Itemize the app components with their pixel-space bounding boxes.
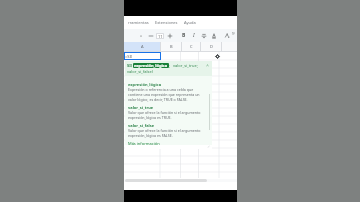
staticText: rramientas (128, 20, 149, 25)
button[interactable]: Borders (232, 31, 235, 40)
staticText: Valor que ofrece la función si el argume… (128, 110, 208, 120)
staticText: ; (169, 63, 171, 68)
button[interactable]: A (124, 42, 160, 51)
staticText: valor_si_true; (173, 63, 198, 68)
button[interactable]: rramientas (125, 19, 152, 26)
staticText: Expresión o referencia a una celda que c… (128, 87, 208, 102)
button[interactable]: Bold (179, 31, 188, 40)
button[interactable]: C (182, 42, 200, 51)
button[interactable]: =SI( (124, 52, 161, 60)
staticText: B (182, 32, 186, 39)
button[interactable]: Settings (214, 53, 220, 59)
button[interactable]: Ayuda (181, 19, 199, 26)
button[interactable]: Decrease font size (146, 31, 155, 40)
staticText: C (190, 44, 193, 49)
button[interactable]: Resize (207, 145, 210, 148)
staticText: =SI( (125, 54, 133, 59)
staticText: Más información (128, 141, 160, 145)
staticText: valor_si_false (128, 123, 155, 128)
staticText: expresión_lógica (128, 82, 162, 87)
button[interactable]: D (201, 42, 221, 51)
button[interactable]: Fill color (222, 31, 231, 40)
staticText: I (193, 32, 195, 39)
staticText: D (210, 44, 213, 49)
button[interactable]: 11 (156, 33, 164, 39)
staticText: Ayuda (184, 20, 196, 25)
button[interactable]: Strikethrough (199, 31, 208, 40)
button[interactable]: B (161, 42, 181, 51)
button[interactable]: SI( (125, 61, 212, 76)
staticText: valor_si_false) (127, 69, 153, 74)
button[interactable]: More (136, 31, 145, 40)
staticText: A (141, 44, 144, 49)
button[interactable]: Más información (128, 141, 160, 145)
staticText: 11 (158, 34, 163, 39)
button[interactable]: Italic (189, 31, 198, 40)
staticText: SI( (127, 63, 133, 68)
button[interactable]: Increase font size (165, 31, 174, 40)
button[interactable]: Extensiones (152, 19, 181, 26)
staticText: valor_si_true (128, 105, 154, 110)
staticText: expresión_lógica (134, 63, 168, 68)
staticText: Valor que ofrece la función si el argume… (128, 128, 208, 138)
button[interactable]: Text color (209, 31, 218, 40)
staticText: Extensiones (155, 20, 178, 25)
staticText: B (170, 44, 173, 49)
button[interactable]: Collapse (205, 63, 210, 68)
